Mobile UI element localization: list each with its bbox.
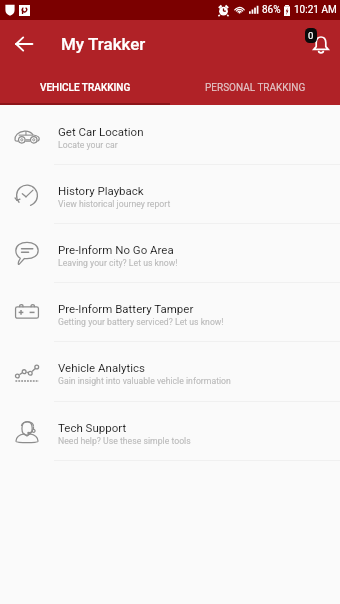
button[interactable]: History Playback <box>0 164 340 223</box>
button[interactable]: Tech Support <box>0 401 340 460</box>
button[interactable]: Pre-Inform No Go Area <box>0 223 340 282</box>
staticText: My Trakker <box>61 34 146 54</box>
staticText: Getting your battery serviced? Let us kn… <box>58 317 224 327</box>
button[interactable]: PERSONAL TRAKKING <box>170 68 340 105</box>
button[interactable]: VEHICLE TRAKKING <box>0 68 170 105</box>
button[interactable]: Back <box>7 27 41 61</box>
staticText: Leaving your city? Let us know! <box>58 258 178 268</box>
staticText: History Playback <box>58 184 144 197</box>
staticText: View historical journey report <box>58 199 171 209</box>
staticText: Gain insight into valuable vehicle infor… <box>58 376 231 386</box>
staticText: PERSONAL TRAKKING <box>205 82 306 94</box>
staticText: 0 <box>308 30 314 41</box>
button[interactable]: Pre-Inform Battery Tamper <box>0 282 340 341</box>
staticText: VEHICLE TRAKKING <box>40 82 131 94</box>
staticText: Vehicle Analytics <box>58 361 145 374</box>
button[interactable]: Get Car Location <box>0 105 340 164</box>
staticText: Locate your car <box>58 140 118 150</box>
staticText: Tech Support <box>58 421 127 434</box>
staticText: Pre-Inform No Go Area <box>58 243 174 256</box>
staticText: Pre-Inform Battery Tamper <box>58 302 194 315</box>
staticText: 86% <box>262 4 281 16</box>
button[interactable]: Vehicle Analytics <box>0 341 340 400</box>
button[interactable]: Notifications <box>301 26 337 62</box>
staticText: Need help? Use these simple tools <box>58 436 191 446</box>
staticText: 10:21 AM <box>294 4 337 16</box>
staticText: Get Car Location <box>58 125 144 138</box>
